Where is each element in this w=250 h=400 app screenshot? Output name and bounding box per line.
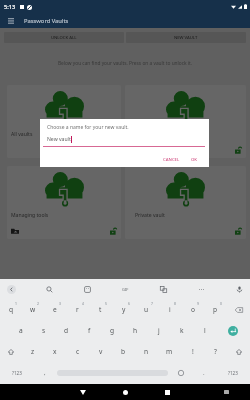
staticText: k [180,326,184,335]
button[interactable]: w [22,299,44,320]
staticText: o [191,305,195,314]
button[interactable]: Shift [227,341,250,362]
button[interactable]: r [66,299,89,320]
staticText: i [169,305,171,314]
button[interactable]: s [32,320,55,341]
button[interactable]: Recent apps [146,384,188,400]
button[interactable]: n [135,341,158,362]
staticText: 8 [174,301,176,306]
button[interactable]: Space [56,362,169,383]
button[interactable]: Managing tools [7,166,121,239]
button[interactable]: Enter [216,320,250,341]
staticText: n [144,347,149,356]
button[interactable]: f [78,320,101,341]
button[interactable]: e [44,299,66,320]
button[interactable]: ! [181,341,204,362]
staticText: v [99,347,103,356]
staticText: Password Vaults [24,17,69,25]
button[interactable]: More options [194,282,208,296]
staticText: . [203,369,205,377]
staticText: z [31,347,35,356]
button[interactable]: All vaults [7,85,121,158]
staticText: s [42,326,46,335]
button[interactable]: Back [62,384,104,400]
staticText: d [64,326,69,335]
button[interactable]: Emoji [169,362,192,383]
button[interactable]: a [10,320,32,341]
staticText: h [133,326,138,335]
button[interactable]: , [34,362,56,383]
button[interactable]: UNLOCK ALL [4,32,124,43]
staticText: UNLOCK ALL [51,35,77,41]
button[interactable]: l [193,320,216,341]
staticText: 9 [197,301,199,306]
staticText: 7 [151,301,153,306]
staticText: ! [192,347,194,356]
button[interactable]: Home [104,384,146,400]
staticText: 3 [59,301,61,306]
button[interactable]: CANCEL [161,154,182,164]
staticText: NEW VAULT [174,35,198,41]
button[interactable]: k [170,320,193,341]
staticText: q [9,305,14,314]
button[interactable]: h [124,320,147,341]
button[interactable]: c [66,341,89,362]
staticText: Below you can find your vaults. Press on… [0,60,250,67]
button[interactable]: Change keyboard [222,388,230,396]
button[interactable]: y [112,299,135,320]
button[interactable]: ?123 [0,362,34,383]
button[interactable] [125,85,246,158]
button[interactable]: Search [42,282,56,296]
button[interactable]: u [135,299,158,320]
staticText: ?123 [228,370,238,376]
button[interactable]: d [55,320,78,341]
button[interactable]: Private vault [125,166,246,239]
staticText: 6 [128,301,130,306]
staticText: p [213,305,218,314]
staticText: j [158,326,160,335]
button[interactable]: i [158,299,181,320]
button[interactable]: ? [204,341,227,362]
button[interactable]: Back [4,282,18,296]
staticText: l [204,326,206,335]
button[interactable]: q [0,299,22,320]
staticText: 0 [220,301,222,306]
button[interactable]: t [89,299,112,320]
staticText: 1 [15,301,17,306]
staticText: w [30,305,36,314]
staticText: 2 [37,301,39,306]
staticText: , [44,369,46,377]
button[interactable]: m [158,341,181,362]
button[interactable]: GIF [118,282,132,296]
button[interactable]: NEW VAULT [126,32,246,43]
button[interactable]: b [112,341,135,362]
staticText: f [88,326,91,335]
button[interactable]: j [147,320,170,341]
button[interactable]: g [101,320,124,341]
staticText: c [76,347,80,356]
button[interactable]: z [22,341,44,362]
button[interactable]: o [181,299,204,320]
staticText: e [53,305,57,314]
staticText: t [99,305,102,314]
staticText: ? [214,347,217,356]
button[interactable]: v [89,341,112,362]
staticText: GIF [122,287,129,292]
button[interactable]: Translate [156,282,170,296]
staticText: b [121,347,126,356]
button[interactable]: x [44,341,66,362]
staticText: ?123 [12,370,22,376]
button[interactable]: Stickers [80,282,94,296]
button[interactable]: p [204,299,227,320]
button[interactable]: Voice input [232,282,246,296]
staticText: 5 [105,301,107,306]
button[interactable]: OK [189,154,200,164]
button[interactable]: ?123 [215,362,250,383]
button[interactable]: Open navigation drawer [4,14,17,27]
staticText: 5:13 [4,3,16,11]
button[interactable]: Shift [0,341,22,362]
button[interactable]: Backspace [227,299,250,320]
staticText: Managing tools [11,212,49,219]
staticText: u [144,305,149,314]
